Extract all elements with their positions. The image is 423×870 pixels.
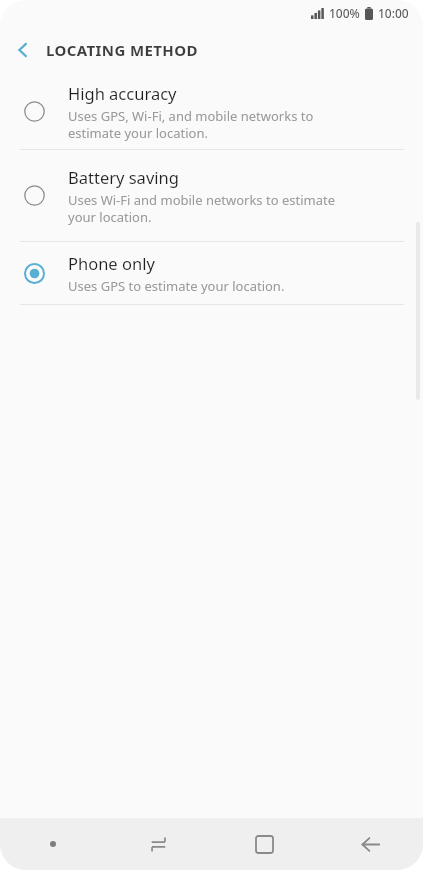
staticText: High accuracy (68, 82, 177, 104)
button[interactable]: Phone only (0, 242, 423, 304)
staticText: Battery saving (68, 166, 179, 188)
staticText: Phone only (68, 252, 155, 274)
staticText: Uses GPS, Wi-Fi, and mobile networks to … (68, 107, 314, 142)
button[interactable]: Recent apps (105, 818, 211, 870)
button[interactable]: High accuracy (0, 74, 423, 149)
button[interactable]: Back (317, 818, 423, 870)
staticText: Uses GPS to estimate your location. (68, 277, 285, 295)
button[interactable]: Back (0, 27, 46, 73)
button[interactable]: Menu dot (0, 818, 105, 870)
staticText: LOCATING METHOD (46, 40, 198, 60)
button[interactable]: Battery saving (0, 150, 423, 241)
staticText: Uses Wi-Fi and mobile networks to estima… (68, 191, 335, 226)
staticText: 100% (329, 5, 360, 21)
staticText: 10:00 (378, 5, 409, 21)
button[interactable]: Home (211, 818, 317, 870)
